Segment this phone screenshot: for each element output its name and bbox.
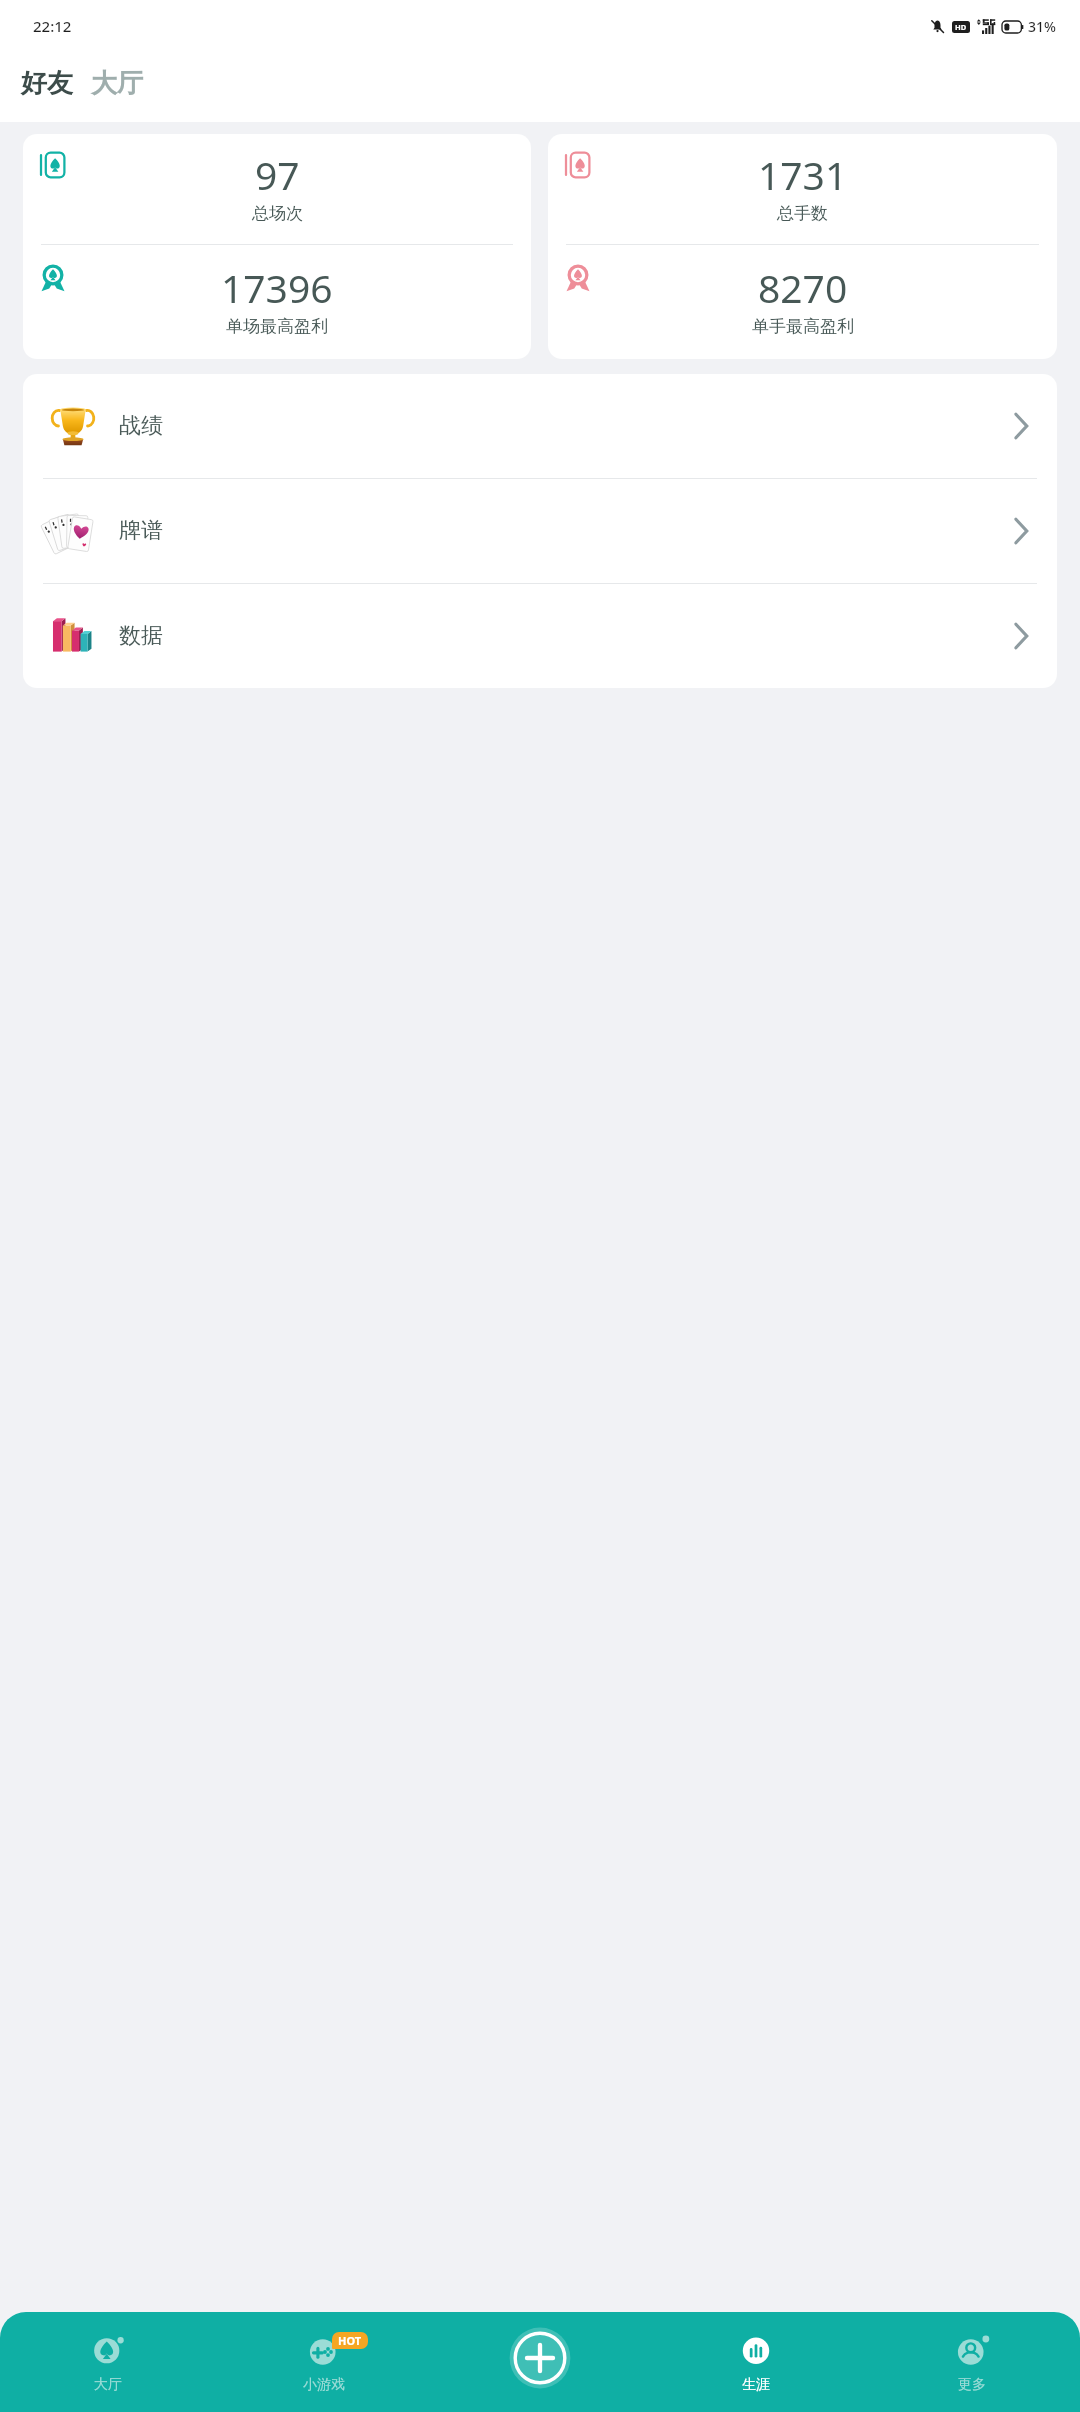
staticText: 总手数: [777, 203, 828, 224]
staticText: HD: [955, 22, 967, 32]
staticText: 更多: [958, 2376, 986, 2394]
staticText: 单场最高盈利: [226, 316, 328, 337]
staticText: 22:12: [33, 16, 72, 36]
button[interactable]: 牌谱: [23, 479, 1057, 583]
button[interactable]: 战绩: [23, 374, 1057, 478]
button[interactable]: 生涯: [648, 2312, 864, 2412]
staticText: 总场次: [252, 203, 303, 224]
button[interactable]: 好友: [21, 67, 73, 100]
staticText: 大厅: [91, 67, 143, 100]
staticText: 战绩: [119, 412, 163, 440]
staticText: 31%: [1028, 17, 1056, 36]
staticText: HOT: [338, 2333, 362, 2348]
button[interactable]: 97: [23, 134, 531, 359]
staticText: 8270: [758, 261, 848, 314]
staticText: 大厅: [94, 2376, 122, 2394]
staticText: 小游戏: [303, 2376, 345, 2394]
button[interactable]: 数据: [23, 584, 1057, 688]
staticText: 生涯: [742, 2376, 770, 2394]
staticText: 1731: [758, 148, 848, 201]
staticText: 数据: [119, 622, 163, 650]
staticText: 牌谱: [119, 517, 163, 545]
button[interactable]: 大厅: [0, 2312, 216, 2412]
button[interactable]: 1731: [548, 134, 1057, 359]
staticText: 好友: [21, 67, 73, 100]
staticText: 17396: [221, 261, 333, 314]
button[interactable]: Create: [432, 2312, 648, 2412]
button[interactable]: 更多: [864, 2312, 1080, 2412]
staticText: 单手最高盈利: [752, 316, 854, 337]
button[interactable]: HOT: [216, 2312, 432, 2412]
staticText: 97: [255, 148, 300, 201]
button[interactable]: 大厅: [91, 67, 143, 100]
